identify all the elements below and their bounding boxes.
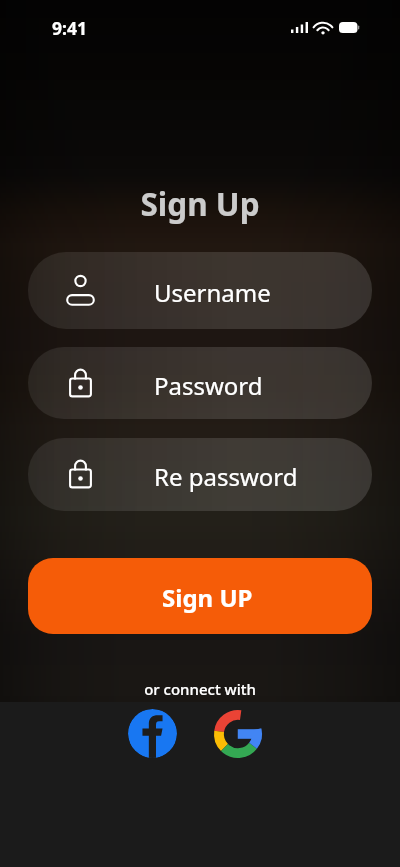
button[interactable]: Sign up with Google: [214, 710, 262, 758]
staticText: Re password: [154, 460, 298, 493]
button[interactable]: Sign up with Facebook: [128, 709, 177, 758]
staticText: 9:41: [52, 16, 87, 40]
staticText: Password: [154, 369, 263, 402]
staticText: Username: [154, 276, 271, 309]
button[interactable]: Password: [28, 347, 372, 419]
button[interactable]: Re password: [28, 438, 372, 511]
staticText: or connect with: [0, 679, 400, 699]
button[interactable]: Username: [28, 252, 372, 329]
button[interactable]: Sign UP: [28, 558, 372, 634]
staticText: Sign Up: [0, 182, 400, 225]
staticText: Sign UP: [162, 581, 253, 614]
